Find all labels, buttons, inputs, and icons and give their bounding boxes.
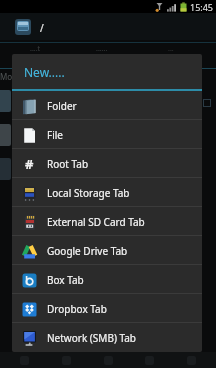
staticText: Google Drive Tab — [47, 244, 128, 258]
button[interactable]: External SD Card Tab — [12, 207, 202, 236]
staticText: Mou — [0, 71, 18, 82]
button[interactable]: Box Tab — [12, 265, 202, 294]
button[interactable]: # — [12, 149, 202, 178]
staticText: Network (SMB) Tab — [47, 331, 137, 345]
button[interactable]: Folder — [12, 91, 202, 120]
staticText: Box Tab — [47, 273, 84, 287]
staticText: 15:45 — [190, 1, 214, 13]
staticText: Dropbox Tab — [47, 302, 107, 316]
staticText: Local Storage Tab — [47, 186, 130, 200]
staticText: New..... — [24, 64, 65, 80]
staticText: Root Tab — [47, 157, 89, 171]
staticText: ....t — [30, 44, 41, 54]
staticText: / — [40, 21, 44, 35]
staticText: # — [25, 155, 34, 173]
button[interactable]: Google Drive Tab — [12, 236, 202, 265]
button[interactable]: Dropbox Tab — [12, 294, 202, 323]
button[interactable]: Local Storage Tab — [12, 178, 202, 207]
staticText: ... — [168, 44, 174, 54]
staticText: External SD Card Tab — [47, 215, 145, 229]
button[interactable]: File — [12, 120, 202, 149]
staticText: Folder — [47, 99, 77, 113]
button[interactable]: Network (SMB) Tab — [12, 323, 202, 352]
staticText: File — [47, 128, 63, 142]
staticText: ...... — [96, 44, 108, 54]
